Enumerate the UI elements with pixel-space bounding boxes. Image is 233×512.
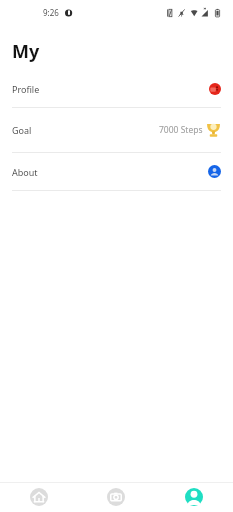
staticText: Profile [12,83,40,95]
button[interactable]: Home [0,483,77,512]
button[interactable]: Explore [77,483,155,512]
button[interactable]: About [0,153,233,190]
staticText: 9:26 [43,7,59,18]
button[interactable]: Profile [0,70,233,107]
button[interactable]: Profile [155,483,233,512]
staticText: My [12,39,40,64]
staticText: 7000 Steps [159,124,203,136]
staticText: Goal [12,124,32,136]
button[interactable]: Goal [0,108,233,152]
staticText: About [12,166,38,178]
